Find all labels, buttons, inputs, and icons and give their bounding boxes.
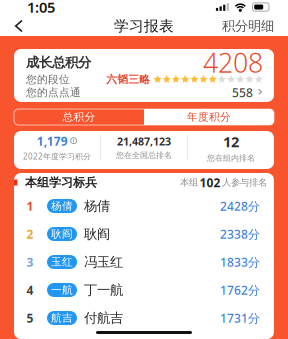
staticText: 1,179 [37, 133, 68, 149]
button[interactable]: 3 [14, 248, 274, 276]
button[interactable]: Back [0, 15, 38, 37]
staticText: 558 [232, 84, 253, 100]
staticText: 12 [223, 132, 239, 151]
staticText: 耿阎 [84, 226, 110, 242]
staticText: 年度积分 [187, 110, 231, 123]
staticText: 玉红 [51, 255, 73, 268]
staticText: 2022年度学习积分 [23, 151, 91, 162]
staticText: 1833分 [220, 254, 260, 270]
staticText: 4208 [203, 45, 263, 80]
button[interactable]: 2 [14, 220, 274, 248]
staticText: 积分明细 [222, 18, 274, 34]
button[interactable]: 总积分 [14, 109, 144, 125]
button[interactable]: 5 [14, 304, 274, 332]
staticText: 耿阎 [51, 227, 73, 240]
staticText: 成长总积分 [26, 54, 91, 71]
button[interactable]: 您的点点通 [26, 86, 263, 99]
staticText: 一航 [51, 283, 73, 296]
staticText: 您的点点通 [26, 86, 81, 99]
staticText: 21,487,123 [117, 134, 171, 149]
staticText: 1 [26, 198, 33, 214]
staticText: 3 [26, 254, 33, 270]
button[interactable]: 年度积分 [144, 109, 274, 125]
staticText: 2428分 [220, 198, 260, 214]
button[interactable]: 1 [14, 192, 274, 220]
staticText: 总积分 [62, 110, 95, 123]
staticText: 学习报表 [114, 17, 174, 35]
staticText: 1:05 [27, 0, 55, 17]
staticText: 102 [199, 174, 220, 190]
staticText: 冯玉红 [84, 254, 123, 270]
staticText: 本组 [180, 177, 198, 188]
staticText: 您的段位 [26, 73, 70, 86]
button[interactable]: 4 [14, 276, 274, 304]
staticText: 杨倩 [84, 198, 110, 214]
staticText: 5 [26, 310, 33, 326]
staticText: 4 [26, 282, 33, 298]
staticText: 1762分 [220, 282, 260, 298]
staticText: 六韬三略 [106, 73, 150, 86]
staticText: 航吉 [51, 311, 73, 324]
staticText: 本组学习标兵 [25, 175, 97, 190]
staticText: 杨倩 [51, 199, 73, 212]
staticText: 2338分 [220, 226, 260, 242]
staticText: 您在组内排名 [207, 153, 255, 163]
staticText: 2 [26, 226, 33, 242]
staticText: 付航吉 [84, 310, 123, 326]
staticText: 人参与排名 [222, 177, 267, 188]
staticText: 丁一航 [84, 282, 123, 298]
button[interactable]: 积分明细 [222, 15, 288, 37]
staticText: 您在全国总排名 [116, 150, 172, 160]
staticText: 1731分 [220, 310, 260, 326]
